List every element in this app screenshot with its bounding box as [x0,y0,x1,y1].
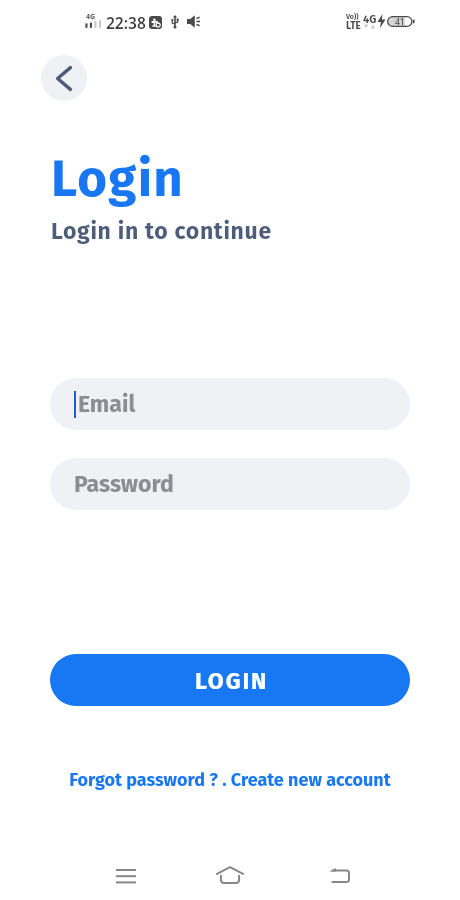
staticText: Vo)) [346,12,359,20]
button[interactable]: Home [208,853,252,897]
staticText: Forgot password ? . Create new account [69,769,391,791]
button[interactable]: Email [50,378,410,430]
button[interactable]: Password [50,458,410,510]
staticText: Login [51,148,185,209]
button[interactable]: Back [41,55,87,101]
staticText: LOGIN [195,667,269,695]
button[interactable]: Forgot password ? . Create new account [0,765,460,795]
staticText: 41 [395,16,405,27]
button[interactable]: LOGIN [50,654,410,706]
staticText: Password [74,470,174,498]
staticText: Email [78,390,136,418]
staticText: 4G [86,12,96,22]
staticText: Login in to continue [51,217,272,245]
button[interactable]: Back [317,854,361,898]
button[interactable]: Recent apps [104,854,148,898]
staticText: LTE [346,20,361,32]
staticText: 22:38 [106,12,146,33]
staticText: 4G [363,13,377,26]
